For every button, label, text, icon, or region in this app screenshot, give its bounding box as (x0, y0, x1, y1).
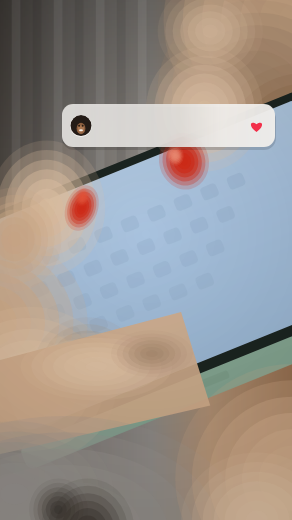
button[interactable]: Profile photo (62, 104, 275, 147)
button[interactable]: Like (245, 115, 267, 137)
other: Profile photo (70, 115, 92, 137)
